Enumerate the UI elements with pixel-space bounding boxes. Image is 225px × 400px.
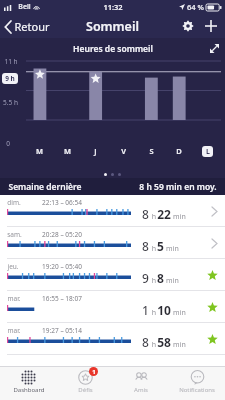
- staticText: 8: [142, 206, 149, 222]
- staticText: D: [176, 146, 182, 156]
- staticText: Amis: [134, 386, 148, 394]
- staticText: 8: [142, 238, 149, 254]
- staticText: Dashboard: [13, 386, 45, 394]
- staticText: h: [149, 340, 157, 350]
- staticText: min: [171, 340, 186, 350]
- staticText: dim.: [7, 198, 21, 207]
- staticText: S: [149, 146, 154, 156]
- staticText: sam.: [7, 230, 22, 239]
- staticText: 19:20 – 05:40: [42, 262, 82, 271]
- staticText: min: [171, 308, 186, 318]
- button[interactable]: mar.: [0, 323, 225, 355]
- button[interactable]: Retour: [0, 16, 55, 37]
- button[interactable]: 1: [57, 367, 113, 400]
- staticText: 5: [157, 238, 164, 254]
- staticText: Bell: [18, 2, 31, 12]
- staticText: 64 %: [187, 2, 204, 12]
- staticText: 9 h: [5, 74, 15, 83]
- staticText: 1: [142, 302, 149, 318]
- staticText: h: [149, 308, 157, 318]
- button[interactable]: Settings: [179, 17, 197, 35]
- staticText: 11:32: [103, 2, 123, 12]
- staticText: 1: [92, 368, 96, 376]
- staticText: Retour: [14, 19, 50, 34]
- button[interactable]: mar.: [0, 291, 225, 323]
- staticText: L: [206, 147, 210, 157]
- staticText: jeu.: [7, 262, 19, 271]
- staticText: h: [149, 212, 157, 222]
- staticText: 20:28 – 05:20: [42, 230, 82, 239]
- button[interactable]: sam.: [0, 227, 225, 259]
- staticText: 11 h: [4, 57, 18, 66]
- button[interactable]: dim.: [0, 195, 225, 227]
- staticText: Heures de sommeil: [73, 43, 153, 55]
- staticText: Notifications: [179, 386, 215, 394]
- button[interactable]: Amis: [113, 367, 169, 400]
- button[interactable]: jeu.: [0, 259, 225, 291]
- staticText: 0: [6, 139, 10, 148]
- staticText: 5.5 h: [3, 98, 18, 107]
- staticText: Sommeil: [86, 18, 139, 35]
- staticText: M: [36, 146, 43, 156]
- staticText: mar.: [7, 294, 21, 303]
- staticText: min: [164, 276, 179, 286]
- staticText: 19:27 – 05:14: [42, 326, 82, 335]
- staticText: h: [149, 244, 157, 254]
- staticText: Défis: [78, 386, 93, 394]
- button[interactable]: Notifications: [169, 367, 225, 400]
- staticText: 10: [157, 302, 171, 318]
- staticText: V: [121, 146, 126, 156]
- button[interactable]: Add: [202, 17, 220, 35]
- staticText: 8: [142, 334, 149, 350]
- staticText: mar.: [7, 326, 21, 335]
- staticText: 22:13 – 06:54: [42, 198, 82, 207]
- button[interactable]: Expand chart: [206, 40, 223, 57]
- staticText: 8 h 59 min en moy.: [139, 181, 217, 193]
- staticText: min: [171, 212, 186, 222]
- staticText: min: [164, 244, 179, 254]
- staticText: M: [64, 146, 71, 156]
- staticText: h: [149, 276, 157, 286]
- staticText: J: [94, 146, 97, 156]
- staticText: 16:55 – 18:07: [42, 294, 82, 303]
- staticText: Semaine dernière: [8, 181, 82, 193]
- button[interactable]: Dashboard: [0, 367, 57, 400]
- staticText: 58: [157, 334, 171, 350]
- staticText: 8: [157, 270, 164, 286]
- staticText: 22: [157, 206, 171, 222]
- staticText: 9: [142, 270, 149, 286]
